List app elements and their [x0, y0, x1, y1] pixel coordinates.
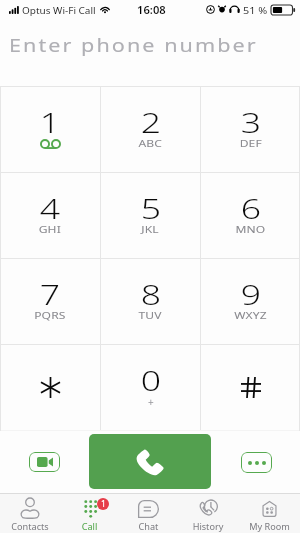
button[interactable]: 0 — [101, 345, 200, 430]
staticText: 1 — [101, 498, 106, 510]
button[interactable]: More options — [241, 452, 272, 473]
staticText: Call — [81, 521, 98, 532]
staticText: 0 — [141, 361, 161, 399]
button[interactable] — [0, 345, 100, 430]
button[interactable]: 1 — [60, 494, 118, 533]
staticText: My Room — [249, 521, 290, 532]
button[interactable]: Contacts — [0, 494, 60, 533]
staticText: JKL — [141, 224, 160, 236]
staticText: Optus Wi-Fi Call — [22, 4, 96, 16]
staticText: 8 — [141, 275, 161, 313]
staticText: 51 % — [243, 4, 268, 16]
staticText: GHI — [39, 224, 61, 236]
staticText: 16:08 — [137, 3, 166, 17]
button[interactable]: History — [178, 494, 238, 533]
button[interactable] — [201, 345, 300, 430]
staticText: TUV — [138, 310, 162, 322]
staticText: Enter phone number — [9, 33, 259, 58]
staticText: 6 — [241, 189, 261, 227]
button[interactable]: 5 — [101, 173, 200, 258]
staticText: 3 — [241, 103, 261, 141]
staticText: + — [148, 395, 154, 409]
button[interactable]: 7 — [0, 259, 100, 344]
staticText: Chat — [138, 521, 159, 532]
staticText: Contacts — [11, 521, 49, 532]
staticText: 4 — [40, 189, 60, 227]
button[interactable]: Chat — [118, 494, 178, 533]
button[interactable]: 9 — [201, 259, 300, 344]
button[interactable]: 2 — [101, 87, 200, 172]
staticText: 9 — [241, 275, 261, 313]
staticText: History — [193, 521, 223, 532]
staticText: PQRS — [34, 310, 67, 322]
button[interactable]: 6 — [201, 173, 300, 258]
staticText: WXYZ — [234, 310, 267, 322]
button[interactable]: 8 — [101, 259, 200, 344]
staticText: 2 — [141, 103, 161, 141]
button[interactable]: 1 — [0, 87, 100, 172]
staticText: 7 — [40, 275, 60, 313]
button[interactable]: Call — [89, 434, 211, 489]
button[interactable]: Video call — [29, 452, 60, 472]
staticText: DEF — [240, 138, 262, 150]
staticText: 5 — [141, 189, 161, 227]
button[interactable]: 3 — [201, 87, 300, 172]
staticText: 1 — [40, 103, 60, 141]
staticText: MNO — [235, 224, 267, 236]
button[interactable]: My Room — [238, 494, 300, 533]
button[interactable]: 4 — [0, 173, 100, 258]
staticText: ABC — [138, 138, 162, 150]
